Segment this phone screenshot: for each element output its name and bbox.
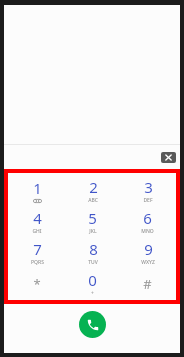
- staticText: ABC: [88, 197, 98, 204]
- staticText: GHI: [32, 228, 42, 235]
- staticText: #: [143, 275, 152, 293]
- button[interactable]: Call: [79, 311, 106, 338]
- button[interactable]: 3: [120, 174, 175, 206]
- button[interactable]: 9: [120, 237, 175, 268]
- staticText: 8: [89, 239, 98, 259]
- staticText: JKL: [89, 228, 97, 235]
- staticText: 6: [143, 208, 152, 228]
- button[interactable]: 8: [65, 237, 120, 268]
- button[interactable]: 7: [9, 237, 65, 268]
- staticText: 7: [33, 239, 42, 259]
- button[interactable]: 5: [65, 206, 120, 237]
- staticText: +: [91, 290, 94, 297]
- button[interactable]: 0: [65, 268, 120, 299]
- button[interactable]: Backspace: [161, 152, 176, 163]
- staticText: DEF: [143, 197, 153, 204]
- staticText: 1: [33, 178, 42, 198]
- button[interactable]: #: [120, 268, 175, 299]
- staticText: 5: [88, 208, 97, 228]
- staticText: WXYZ: [141, 259, 155, 266]
- staticText: TUV: [88, 259, 98, 266]
- button[interactable]: 1: [9, 174, 65, 206]
- staticText: 4: [33, 208, 42, 228]
- staticText: 2: [89, 177, 98, 197]
- button[interactable]: 6: [120, 206, 175, 237]
- button[interactable]: *: [9, 268, 65, 299]
- staticText: MNO: [141, 228, 154, 235]
- staticText: PQRS: [31, 259, 44, 266]
- staticText: 9: [144, 239, 153, 259]
- staticText: 0: [88, 270, 97, 290]
- staticText: 3: [144, 177, 153, 197]
- button[interactable]: 2: [65, 174, 120, 206]
- staticText: *: [33, 275, 41, 293]
- button[interactable]: 4: [9, 206, 65, 237]
